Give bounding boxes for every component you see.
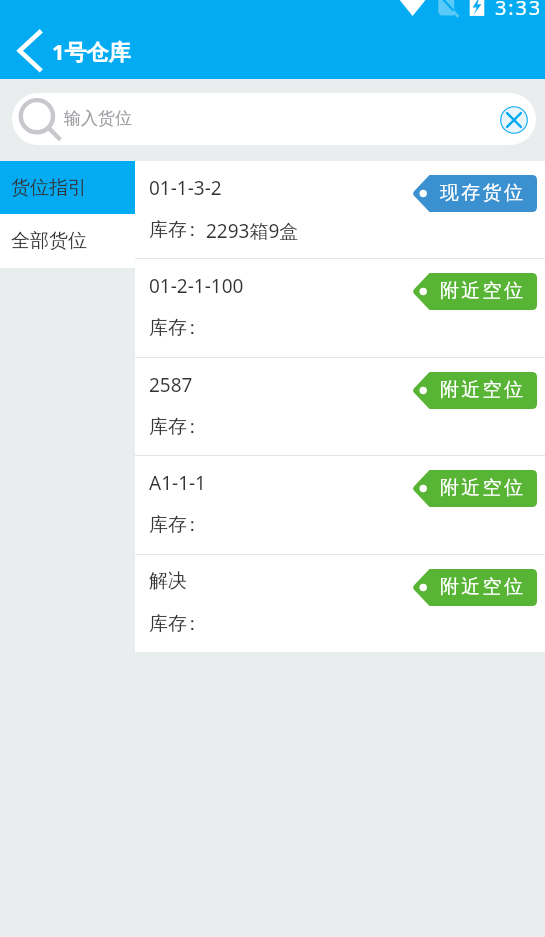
staticText: 货位指引	[11, 176, 87, 200]
staticText: 解决	[149, 569, 187, 593]
staticText: A1-1-1	[149, 470, 206, 496]
staticText: 现存货位	[440, 181, 526, 205]
staticText: 库存	[149, 612, 187, 636]
staticText: 附近空位	[440, 575, 526, 599]
staticText: 附近空位	[440, 378, 526, 402]
button[interactable]: 01-2-1-100	[135, 259, 545, 357]
button[interactable]: 输入货位	[12, 93, 536, 145]
staticText: 附近空位	[440, 279, 526, 303]
staticText: 附近空位	[440, 476, 526, 500]
staticText: 3:33	[495, 0, 542, 21]
staticText: 输入货位	[64, 108, 132, 129]
button[interactable]: Clear	[498, 104, 530, 136]
staticText: ：	[183, 316, 202, 340]
button[interactable]: 解决	[135, 555, 545, 652]
staticText: 2293箱9盒	[206, 218, 299, 244]
button[interactable]: 货位指引	[0, 161, 135, 214]
staticText: 01-2-1-100	[149, 273, 244, 299]
button[interactable]: 01-1-3-2	[135, 161, 545, 258]
button[interactable]: A1-1-1	[135, 456, 545, 554]
staticText: ：	[183, 612, 202, 636]
staticText: 库存	[149, 316, 187, 340]
staticText: ：	[183, 218, 202, 242]
staticText: 1号仓库	[52, 36, 131, 66]
staticText: ：	[183, 513, 202, 537]
staticText: 库存	[149, 415, 187, 439]
staticText: 2587	[149, 372, 193, 398]
button[interactable]: 全部货位	[0, 214, 135, 268]
staticText: 01-1-3-2	[149, 175, 222, 201]
staticText: 库存	[149, 513, 187, 537]
staticText: 库存	[149, 218, 187, 242]
button[interactable]: Back	[0, 25, 52, 77]
staticText: ：	[183, 415, 202, 439]
staticText: 全部货位	[11, 229, 87, 253]
button[interactable]: 2587	[135, 358, 545, 455]
